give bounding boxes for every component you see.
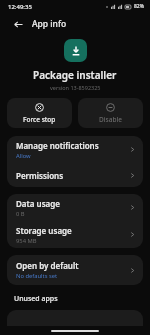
staticText: 954 MB (16, 237, 37, 245)
staticText: Package installer (33, 68, 117, 82)
staticText: Open by default (16, 260, 79, 271)
staticText: Data usage (16, 198, 60, 209)
staticText: Manage notifications (16, 140, 99, 151)
staticText: 12:49:35 (8, 3, 32, 11)
button[interactable]: Back (10, 16, 26, 32)
staticText: version 13-8592325 (50, 84, 101, 91)
button[interactable]: Force stop (7, 98, 72, 128)
staticText: Allow (16, 152, 31, 160)
button[interactable]: Manage notifications (7, 136, 143, 163)
button[interactable]: Permissions (7, 163, 143, 187)
button[interactable]: Data usage (7, 194, 143, 221)
staticText: Storage usage (16, 225, 72, 236)
staticText: Unused apps (14, 294, 58, 304)
staticText: Permissions (16, 170, 64, 181)
staticText: Disable (99, 115, 122, 124)
staticText: App info (32, 18, 67, 30)
staticText: Force stop (23, 115, 56, 124)
button[interactable]: Storage usage (7, 221, 143, 248)
staticText: No defaults set (16, 272, 58, 280)
button[interactable]: Open by default (7, 255, 143, 285)
button[interactable]: Disable (78, 98, 143, 128)
staticText: 82% (134, 3, 144, 10)
staticText: 0 B (16, 210, 25, 218)
